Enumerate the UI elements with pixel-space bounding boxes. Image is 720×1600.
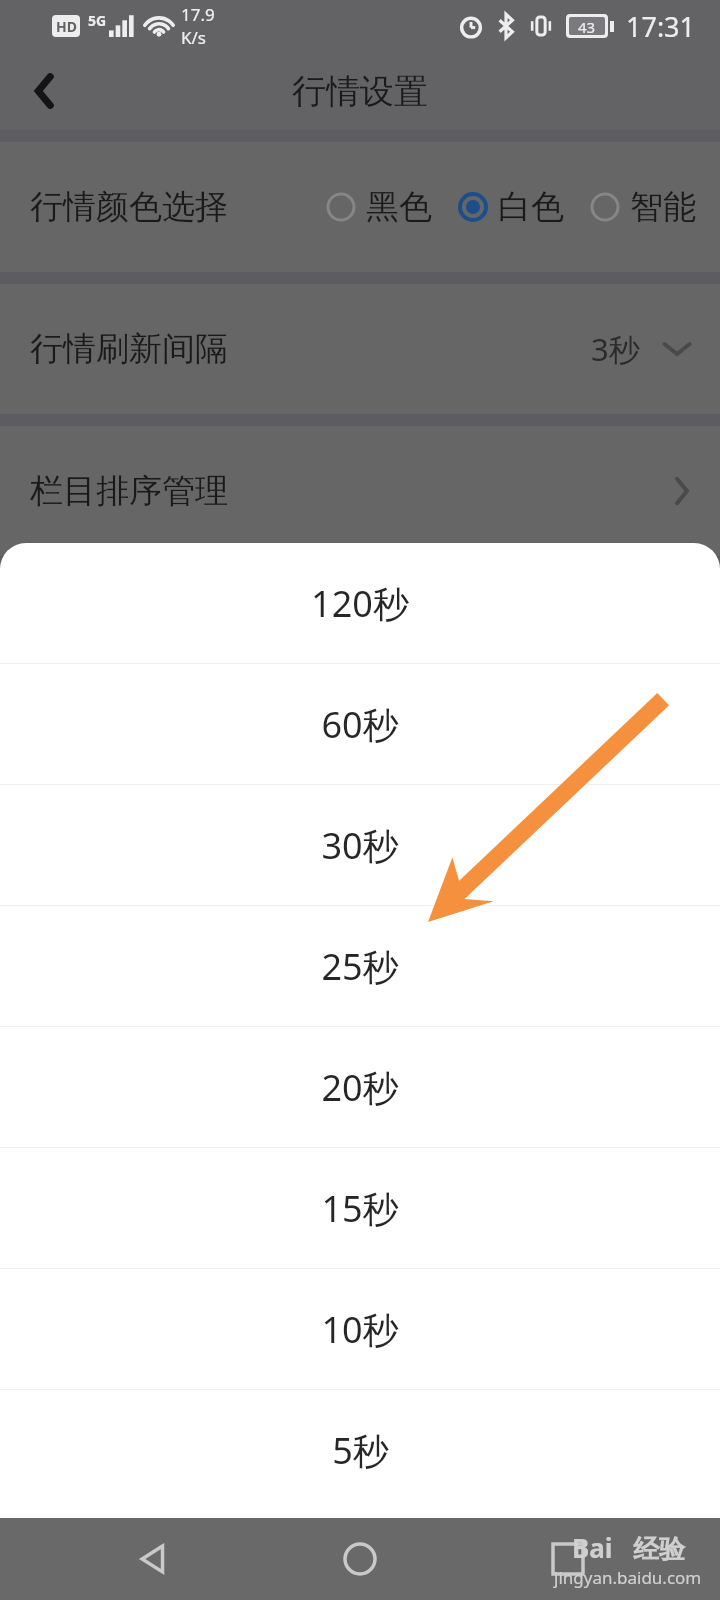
button[interactable]: Recent apps bbox=[513, 1518, 623, 1600]
staticText: 5G bbox=[88, 11, 107, 30]
staticText: 栏目排序管理 bbox=[30, 470, 228, 512]
staticText: 20秒 bbox=[321, 1063, 399, 1112]
button[interactable]: 黑色 bbox=[322, 178, 436, 236]
button[interactable]: 5秒 bbox=[0, 1390, 720, 1510]
button[interactable]: 120秒 bbox=[0, 543, 720, 663]
staticText: 3秒 bbox=[591, 328, 640, 370]
staticText: 43 bbox=[578, 17, 596, 35]
button[interactable]: 15秒 bbox=[0, 1148, 720, 1268]
button[interactable]: 行情颜色选择 bbox=[0, 142, 720, 272]
staticText: 10秒 bbox=[321, 1305, 399, 1354]
button[interactable]: 栏目排序管理 bbox=[0, 426, 720, 556]
staticText: 行情设置 bbox=[292, 70, 428, 113]
staticText: 5秒 bbox=[332, 1426, 389, 1475]
button[interactable]: 10秒 bbox=[0, 1269, 720, 1389]
button[interactable]: 智能 bbox=[586, 178, 700, 236]
staticText: K/s bbox=[181, 26, 206, 49]
button[interactable]: 30秒 bbox=[0, 785, 720, 905]
button[interactable]: 60秒 bbox=[0, 664, 720, 784]
staticText: 黑色 bbox=[366, 186, 432, 228]
staticText: 30秒 bbox=[321, 821, 399, 870]
staticText: 60秒 bbox=[321, 700, 399, 749]
staticText: 智能 bbox=[630, 186, 696, 228]
staticText: jingyan.baidu.com bbox=[554, 1566, 702, 1589]
button[interactable]: 20秒 bbox=[0, 1027, 720, 1147]
staticText: 120秒 bbox=[311, 579, 409, 628]
staticText: 15秒 bbox=[321, 1184, 399, 1233]
staticText: 白色 bbox=[498, 186, 564, 228]
button[interactable]: 白色 bbox=[454, 178, 568, 236]
button[interactable]: Back bbox=[98, 1518, 208, 1600]
staticText: 行情颜色选择 bbox=[30, 186, 228, 228]
staticText: Bai 经验 bbox=[572, 1530, 685, 1566]
button[interactable]: 25秒 bbox=[0, 906, 720, 1026]
staticText: 17.9 bbox=[181, 3, 215, 26]
button[interactable]: 行情刷新间隔 bbox=[0, 284, 720, 414]
staticText: 25秒 bbox=[321, 942, 399, 991]
staticText: 17:31 bbox=[626, 8, 696, 45]
staticText: 行情刷新间隔 bbox=[30, 328, 228, 370]
button[interactable]: Home bbox=[305, 1518, 415, 1600]
staticText: HD bbox=[56, 17, 77, 36]
button[interactable]: Back bbox=[0, 52, 90, 130]
